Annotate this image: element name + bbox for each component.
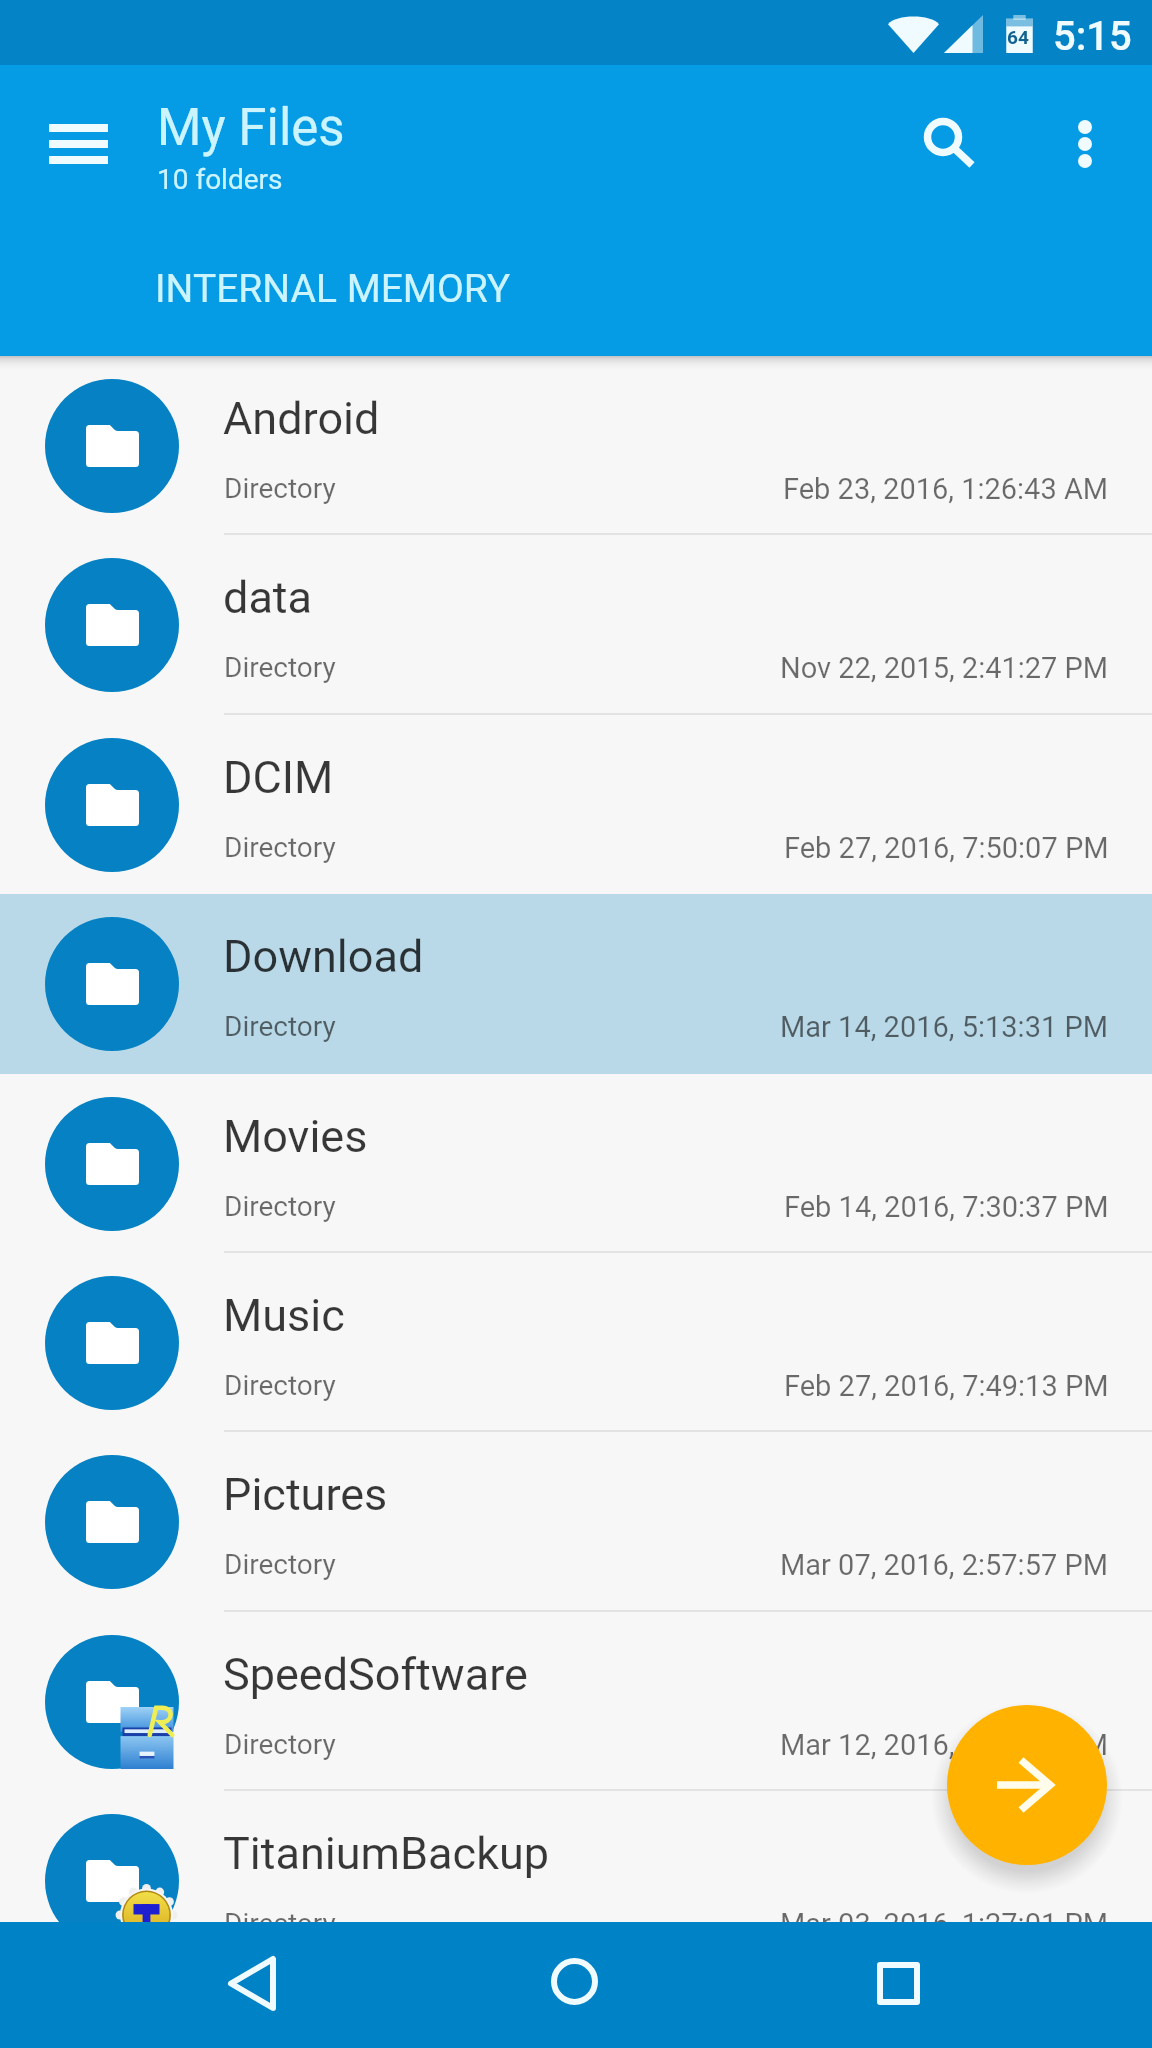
staticText: Feb 27, 2016, 7:49:13 PM: [784, 1369, 1109, 1403]
staticText: 10 folders: [157, 163, 283, 196]
staticText: Android: [223, 392, 380, 445]
button[interactable]: Back: [197, 1928, 307, 2038]
button[interactable]: More options: [1025, 84, 1145, 204]
staticText: Directory: [224, 1907, 336, 1940]
staticText: Mar 12, 2016, 2:17:42 PM: [780, 1728, 1109, 1762]
button[interactable]: Pictures: [0, 1432, 1152, 1612]
staticText: Feb 14, 2016, 7:30:37 PM: [784, 1190, 1109, 1224]
button[interactable]: Android: [0, 356, 1152, 535]
button[interactable]: DCIM: [0, 715, 1152, 894]
staticText: Directory: [224, 1369, 336, 1402]
staticText: SpeedSoftware: [223, 1648, 528, 1701]
staticText: INTERNAL MEMORY: [155, 266, 511, 312]
staticText: Directory: [224, 472, 336, 505]
staticText: 64: [1007, 26, 1029, 48]
button[interactable]: Music: [0, 1253, 1152, 1432]
staticText: Directory: [224, 1010, 336, 1043]
staticText: Feb 27, 2016, 7:50:07 PM: [784, 831, 1109, 865]
button[interactable]: Search: [865, 79, 985, 199]
button[interactable]: Home: [519, 1926, 629, 2036]
staticText: Music: [223, 1289, 345, 1342]
staticText: Mar 07, 2016, 2:57:57 PM: [780, 1548, 1109, 1582]
staticText: DCIM: [223, 751, 334, 804]
staticText: Directory: [224, 1548, 336, 1581]
button[interactable]: TitaniumBackup: [0, 1791, 1152, 1971]
staticText: 5:15: [1053, 13, 1132, 60]
button[interactable]: Download: [0, 894, 1152, 1074]
staticText: Directory: [224, 1190, 336, 1223]
staticText: Directory: [224, 831, 336, 864]
button[interactable]: Movies: [0, 1074, 1152, 1253]
staticText: Movies: [223, 1110, 368, 1163]
button[interactable]: Navigation menu: [18, 84, 138, 204]
button[interactable]: data: [0, 535, 1152, 715]
button[interactable]: Recent apps: [843, 1928, 953, 2038]
staticText: Feb 23, 2016, 1:26:43 AM: [783, 472, 1109, 506]
staticText: My Files: [157, 98, 345, 158]
staticText: Nov 22, 2015, 2:41:27 PM: [780, 651, 1109, 685]
staticText: Directory: [224, 1728, 336, 1761]
staticText: Pictures: [223, 1468, 388, 1521]
staticText: Directory: [224, 651, 336, 684]
staticText: TitaniumBackup: [223, 1827, 550, 1880]
button[interactable]: Next: [947, 1705, 1107, 1865]
staticText: data: [223, 571, 313, 624]
staticText: Download: [223, 930, 424, 983]
staticText: Mar 14, 2016, 5:13:31 PM: [780, 1010, 1109, 1044]
button[interactable]: SpeedSoftware: [0, 1612, 1152, 1791]
staticText: Mar 03, 2016, 1:27:01 PM: [780, 1907, 1109, 1941]
